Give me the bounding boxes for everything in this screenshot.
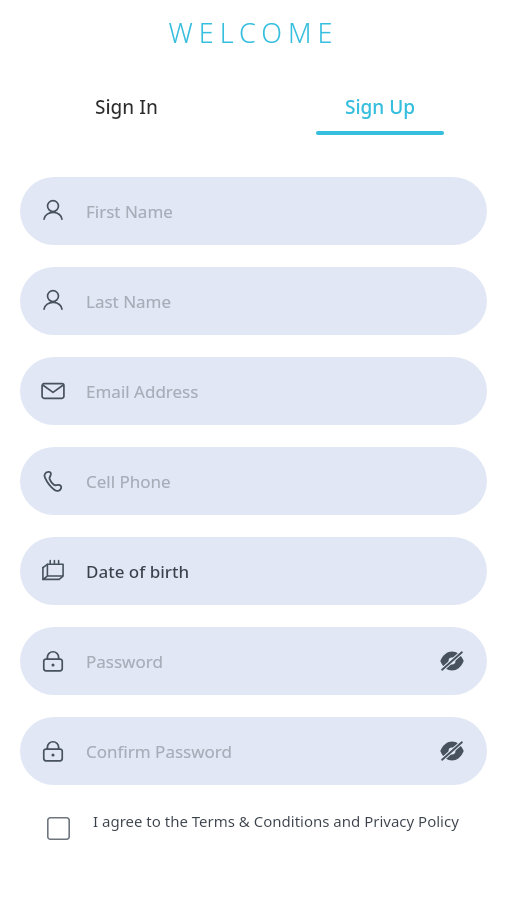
button[interactable]: Confirm Password (20, 717, 487, 785)
staticText: Email Address (86, 380, 199, 403)
button[interactable]: Sign Up (253, 94, 507, 135)
staticText: Cell Phone (86, 470, 171, 493)
button[interactable]: Cell Phone (20, 447, 487, 515)
button[interactable]: Password (20, 627, 487, 695)
button[interactable]: I agree to the Terms & Conditions and Pr… (0, 811, 507, 840)
staticText: Sign Up (345, 94, 416, 120)
staticText: I agree to the Terms & Conditions and Pr… (93, 811, 459, 831)
button[interactable]: Show password (437, 736, 467, 766)
button[interactable]: Sign In (0, 94, 253, 135)
staticText: Password (86, 650, 163, 673)
staticText: Last Name (86, 290, 172, 313)
button[interactable]: Email Address (20, 357, 487, 425)
staticText: Confirm Password (86, 740, 232, 763)
button[interactable]: Date of birth (20, 537, 487, 605)
button[interactable]: Show password (437, 646, 467, 676)
button[interactable]: Last Name (20, 267, 487, 335)
button[interactable]: First Name (20, 177, 487, 245)
staticText: First Name (86, 200, 173, 223)
staticText: Sign In (95, 94, 158, 120)
staticText: WELCOME (168, 14, 339, 51)
staticText: Date of birth (86, 560, 190, 583)
